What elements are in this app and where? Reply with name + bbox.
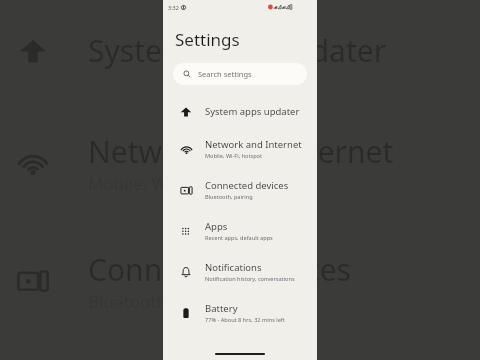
staticText: Connected devices [205, 179, 289, 192]
button[interactable]: Battery [163, 296, 317, 330]
button[interactable]: Network and Internet [163, 132, 317, 166]
staticText: Network and Internet [88, 131, 394, 172]
button[interactable]: System apps updater [163, 99, 317, 124]
button[interactable]: Connected devices [163, 173, 317, 207]
staticText: 77% - About 8 hrs, 32 mins left [205, 316, 285, 324]
staticText: Mobile, Wi-Fi, hotspot [88, 172, 262, 195]
staticText: Connected devices [88, 249, 351, 290]
staticText: Notification history, conversations [205, 275, 295, 283]
staticText: Recent apps, default apps [205, 234, 273, 242]
button[interactable]: Apps [163, 214, 317, 248]
button[interactable]: Notifications [163, 255, 317, 289]
staticText: Notifications [205, 261, 262, 274]
staticText: Bluetooth, pairing [205, 193, 253, 201]
staticText: System apps updater [205, 105, 300, 118]
staticText: Apps [205, 220, 228, 233]
staticText: Search settings [198, 69, 252, 79]
staticText: Bluetooth, pairing [88, 290, 233, 313]
staticText: Network and Internet [205, 138, 302, 151]
staticText: System apps updater [88, 30, 387, 71]
button[interactable]: Search settings [173, 63, 307, 85]
staticText: 3:32 [168, 4, 179, 11]
staticText: Battery [205, 302, 238, 315]
staticText: Mobile, Wi-Fi, hotspot [205, 152, 263, 160]
staticText: Settings [175, 28, 240, 51]
